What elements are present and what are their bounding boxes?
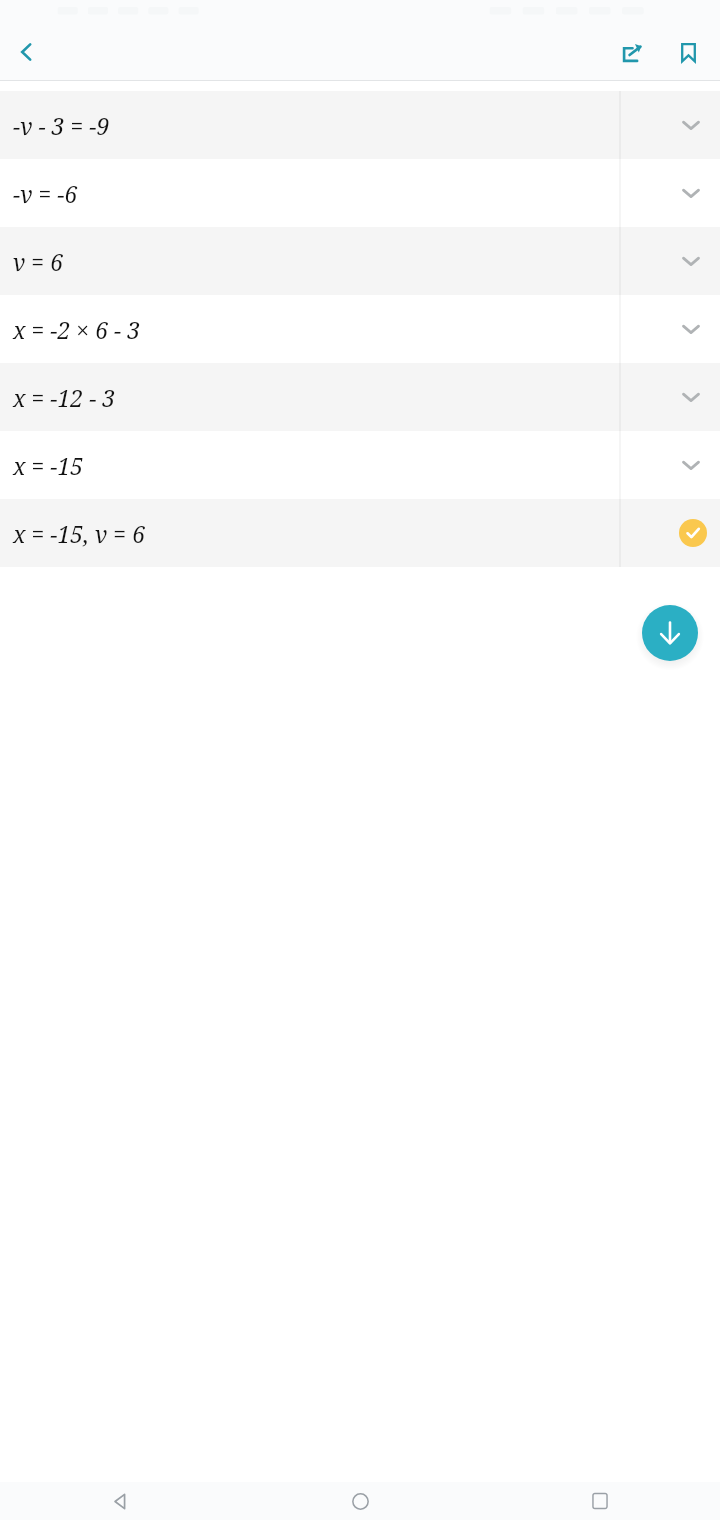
staticText: −v − 3 = −9 xyxy=(13,110,110,141)
button[interactable]: Solution verified xyxy=(679,519,707,547)
button[interactable]: Scroll to bottom xyxy=(642,605,698,661)
button[interactable]: x = −15 xyxy=(0,431,720,499)
button[interactable]: Share xyxy=(610,30,654,74)
button[interactable]: v = 6 xyxy=(0,227,720,295)
button[interactable]: x = −2 × 6 − 3 xyxy=(0,295,720,363)
button[interactable]: Expand step xyxy=(674,312,708,346)
staticText: x = −12 − 3 xyxy=(13,382,116,413)
button[interactable]: Expand step xyxy=(674,448,708,482)
button[interactable]: Back xyxy=(6,31,48,73)
button[interactable]: −v − 3 = −9 xyxy=(0,91,720,159)
button[interactable]: x = −12 − 3 xyxy=(0,363,720,431)
staticText: x = −15 xyxy=(13,450,84,481)
button[interactable]: Expand step xyxy=(674,244,708,278)
button[interactable]: −v = −6 xyxy=(0,159,720,227)
button[interactable]: Expand step xyxy=(674,108,708,142)
button[interactable]: Expand step xyxy=(674,176,708,210)
button[interactable]: Home xyxy=(240,1482,480,1520)
button[interactable]: Bookmark xyxy=(666,30,710,74)
button[interactable]: Back xyxy=(0,1482,240,1520)
button[interactable]: x = −15, v = 6 xyxy=(0,499,720,567)
button[interactable]: Expand step xyxy=(674,380,708,414)
staticText: x = −2 × 6 − 3 xyxy=(13,314,140,345)
staticText: v = 6 xyxy=(13,246,64,277)
staticText: x = −15, v = 6 xyxy=(13,518,145,549)
staticText: −v = −6 xyxy=(13,178,78,209)
button[interactable]: Recent apps xyxy=(480,1482,720,1520)
